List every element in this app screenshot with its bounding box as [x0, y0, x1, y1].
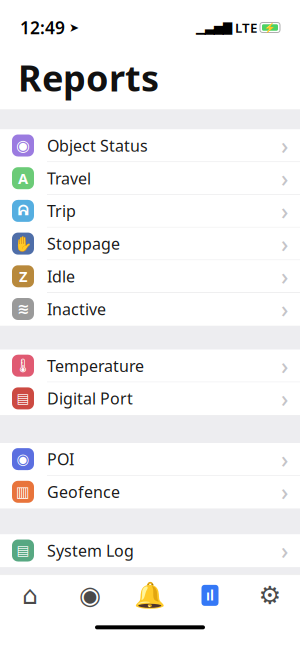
staticText: ›: [281, 477, 288, 507]
button[interactable]: ᕱ: [0, 195, 300, 228]
staticText: Idle: [47, 266, 75, 287]
staticText: ≋: [17, 301, 29, 317]
staticText: ◉: [79, 581, 101, 610]
staticText: Object Status: [47, 135, 148, 156]
button[interactable]: ▤: [0, 534, 300, 567]
staticText: ›: [281, 351, 288, 381]
staticText: ▁▃▅▇: [196, 21, 232, 34]
staticText: Trip: [47, 200, 76, 221]
staticText: ›: [281, 163, 288, 193]
staticText: ◉: [16, 451, 29, 467]
staticText: ▤: [16, 543, 29, 558]
staticText: Digital Port: [47, 388, 133, 409]
button[interactable]: 🔔: [120, 575, 180, 615]
staticText: Z: [19, 267, 27, 286]
staticText: 12:49: [20, 16, 65, 39]
button[interactable]: 🌡: [0, 350, 300, 382]
button[interactable]: ◉: [0, 443, 300, 476]
staticText: Stoppage: [47, 233, 120, 254]
button[interactable]: ≋: [0, 293, 300, 326]
staticText: Temperature: [47, 355, 144, 376]
button[interactable]: ⌂: [0, 575, 60, 615]
staticText: LTE: [235, 19, 257, 36]
staticText: ▥: [16, 483, 30, 500]
staticText: System Log: [47, 540, 134, 561]
staticText: 🌡: [14, 358, 31, 373]
staticText: ›: [281, 130, 288, 160]
staticText: ›: [281, 383, 288, 413]
button[interactable]: ıl: [180, 575, 240, 615]
staticText: ›: [281, 196, 288, 226]
staticText: Inactive: [47, 298, 106, 320]
staticText: ›: [281, 294, 288, 324]
button[interactable]: ◉: [0, 129, 300, 162]
staticText: ›: [281, 228, 288, 259]
staticText: ⚡: [264, 22, 276, 33]
button[interactable]: Z: [0, 260, 300, 293]
staticText: ⌂: [22, 581, 38, 610]
button[interactable]: A: [0, 162, 300, 195]
staticText: Travel: [47, 168, 91, 189]
staticText: ◉: [16, 136, 30, 155]
staticText: Reports: [18, 54, 159, 101]
staticText: ›: [281, 444, 288, 474]
staticText: 🔔: [134, 581, 166, 610]
staticText: POI: [47, 448, 74, 470]
staticText: ✋: [14, 235, 32, 252]
staticText: ▤: [16, 391, 29, 406]
button[interactable]: ✋: [0, 228, 300, 260]
staticText: ᕱ: [17, 204, 28, 218]
staticText: ›: [281, 261, 288, 291]
staticText: ➤: [65, 21, 79, 34]
staticText: Geofence: [47, 481, 120, 502]
button[interactable]: ⚙: [240, 575, 300, 615]
staticText: ıl: [206, 586, 214, 604]
button[interactable]: ◉: [60, 575, 120, 615]
staticText: A: [18, 168, 28, 188]
button[interactable]: ▥: [0, 476, 300, 508]
staticText: ›: [281, 535, 288, 565]
staticText: ⚙: [258, 581, 281, 610]
button[interactable]: ▤: [0, 382, 300, 415]
